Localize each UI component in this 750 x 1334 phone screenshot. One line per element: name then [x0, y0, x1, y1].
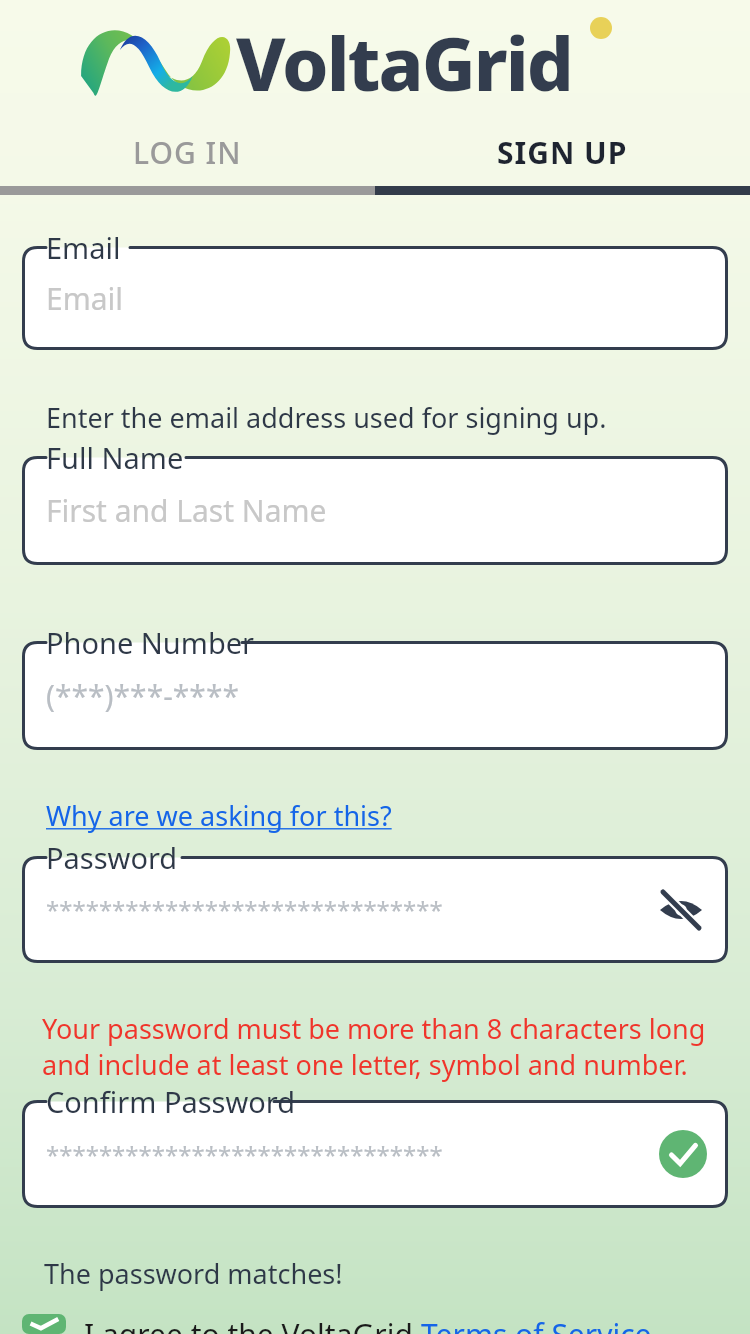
staticText: VoltaGrid: [236, 12, 572, 113]
button[interactable]: Show password: [654, 883, 708, 937]
button[interactable]: I agree to the VoltaGrid: [22, 1314, 728, 1334]
staticText: The password matches!: [44, 1255, 343, 1292]
button[interactable]: Why are we asking for this?: [46, 797, 392, 834]
button[interactable]: Terms of Service: [421, 1314, 652, 1334]
staticText: ******************************: [46, 893, 443, 926]
staticText: LOG IN: [133, 132, 242, 173]
staticText: Confirm Password: [46, 1082, 296, 1121]
staticText: Full Name: [46, 438, 184, 477]
button[interactable]: LOG IN: [0, 118, 375, 186]
staticText: ******************************: [46, 1138, 443, 1171]
staticText: Password: [46, 838, 178, 877]
staticText: Email: [46, 228, 121, 267]
staticText: Phone Number: [46, 623, 255, 662]
staticText: I agree to the VoltaGrid: [84, 1314, 421, 1334]
other: Passwords match: [658, 1129, 708, 1179]
staticText: SIGN UP: [497, 132, 628, 173]
staticText: Why are we asking for this?: [46, 797, 392, 834]
staticText: Enter the email address used for signing…: [46, 399, 607, 436]
staticText: (***)***-****: [46, 675, 239, 716]
staticText: Email: [46, 278, 124, 319]
button[interactable]: SIGN UP: [375, 118, 750, 186]
staticText: Your password must be more than 8 charac…: [42, 1010, 708, 1083]
staticText: First and Last Name: [46, 490, 327, 531]
